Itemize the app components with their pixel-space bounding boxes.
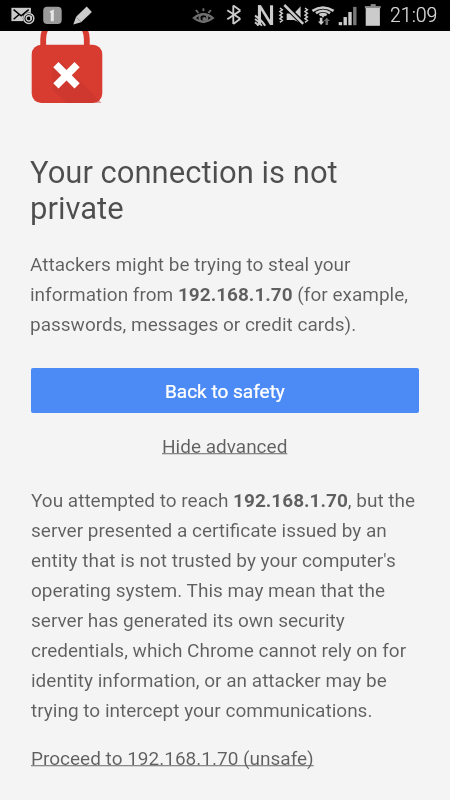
staticText: Attackers might be trying to steal your … [30, 253, 418, 335]
button[interactable]: Hide advanced [156, 431, 294, 461]
staticText: 21:09 [390, 4, 438, 27]
staticText: Hide advanced [162, 435, 288, 457]
staticText: Back to safety [165, 380, 285, 402]
staticText: Your connection is not private [30, 154, 418, 226]
staticText: You attempted to reach 192.168.1.70, but… [31, 489, 419, 721]
button[interactable]: Proceed to 192.168.1.70 (unsafe) [31, 747, 314, 769]
button[interactable]: Back to safety [31, 368, 419, 413]
staticText: Proceed to 192.168.1.70 (unsafe) [31, 747, 314, 769]
